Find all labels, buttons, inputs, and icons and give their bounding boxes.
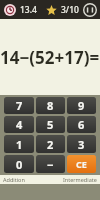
button[interactable]: CE — [67, 155, 96, 173]
button[interactable]: 7 — [4, 97, 34, 114]
staticText: 14−(52+17)= — [0, 46, 100, 69]
button[interactable]: 2 — [36, 135, 65, 153]
button[interactable]: 4 — [4, 116, 34, 133]
button[interactable]: 0 — [4, 155, 34, 173]
staticText: 8 — [47, 98, 54, 113]
staticText: 2 — [47, 137, 54, 152]
button[interactable]: − — [36, 155, 65, 173]
staticText: Intermediate — [63, 176, 97, 183]
button[interactable]: 9 — [67, 97, 96, 114]
staticText: CE — [76, 158, 87, 170]
button[interactable]: Stars earned — [45, 4, 57, 16]
staticText: 9 — [78, 98, 85, 113]
staticText: 13.4 — [20, 4, 37, 16]
button[interactable]: 5 — [36, 116, 65, 133]
button[interactable]: 3 — [67, 135, 96, 153]
staticText: 7 — [16, 98, 23, 113]
staticText: − — [47, 157, 54, 172]
button[interactable]: 8 — [36, 97, 65, 114]
button[interactable]: 1 — [4, 135, 34, 153]
staticText: 4 — [16, 117, 23, 132]
staticText: 0 — [16, 157, 23, 172]
button[interactable]: 6 — [67, 116, 96, 133]
staticText: 1 — [16, 137, 23, 152]
staticText: 3/10 — [61, 4, 79, 16]
staticText: 3 — [78, 137, 85, 152]
staticText: 6 — [78, 117, 85, 132]
button[interactable]: Timer — [3, 3, 16, 16]
button[interactable]: Pause — [82, 2, 97, 17]
staticText: 5 — [47, 117, 54, 132]
staticText: Addition — [3, 176, 25, 183]
